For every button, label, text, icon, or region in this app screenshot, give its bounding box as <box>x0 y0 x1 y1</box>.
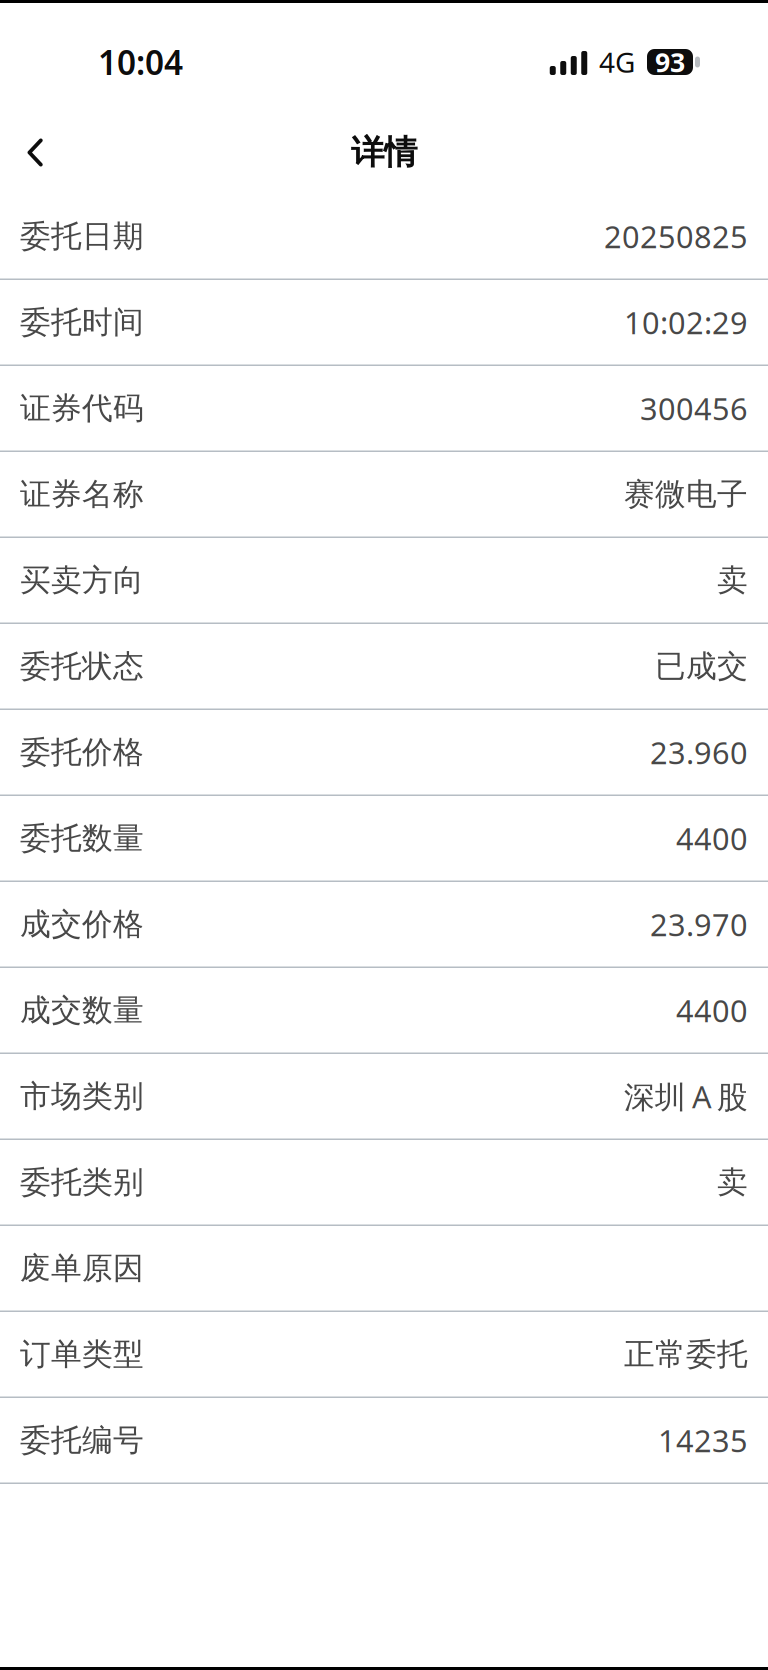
staticText: 10:04 <box>98 40 183 84</box>
staticText: 委托编号 <box>20 1421 144 1459</box>
staticText: 23.970 <box>650 904 748 945</box>
staticText: 深圳 A 股 <box>624 1076 748 1117</box>
staticText: 4G <box>599 43 635 81</box>
staticText: 93 <box>655 44 685 80</box>
staticText: 委托状态 <box>20 647 144 685</box>
staticText: 买卖方向 <box>20 561 144 599</box>
staticText: 4400 <box>676 818 748 859</box>
staticText: 10:02:29 <box>624 302 748 343</box>
staticText: 23.960 <box>650 732 748 773</box>
staticText: 成交数量 <box>20 991 144 1029</box>
staticText: 4400 <box>676 990 748 1031</box>
staticText: 证券代码 <box>20 389 144 427</box>
staticText: 20250825 <box>604 216 748 257</box>
staticText: 300456 <box>640 388 748 429</box>
staticText: 成交价格 <box>20 905 144 943</box>
staticText: 正常委托 <box>624 1335 748 1373</box>
staticText: 14235 <box>658 1420 748 1461</box>
staticText: 订单类型 <box>20 1335 144 1373</box>
staticText: 已成交 <box>655 647 748 685</box>
button[interactable]: 返回 <box>0 112 70 178</box>
staticText: 市场类别 <box>20 1077 144 1115</box>
staticText: 委托时间 <box>20 303 144 341</box>
staticText: 证券名称 <box>20 475 144 513</box>
staticText: 废单原因 <box>20 1249 144 1287</box>
staticText: 详情 <box>351 132 417 173</box>
staticText: 卖 <box>717 561 748 599</box>
staticText: 委托数量 <box>20 819 144 857</box>
staticText: 卖 <box>717 1163 748 1201</box>
staticText: 委托价格 <box>20 733 144 771</box>
staticText: 委托日期 <box>20 217 144 255</box>
staticText: 赛微电子 <box>624 475 748 513</box>
staticText: 委托类别 <box>20 1163 144 1201</box>
